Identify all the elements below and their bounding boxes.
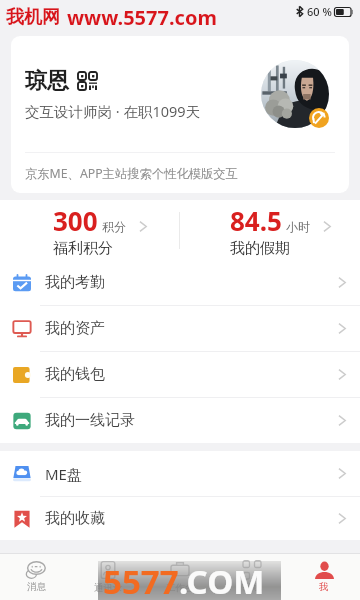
- button[interactable]: 工作台: [144, 554, 216, 600]
- staticText: 消息: [27, 581, 46, 593]
- staticText: 福利积分: [53, 239, 113, 258]
- staticText: 小时: [286, 219, 310, 234]
- staticText: 我: [319, 581, 329, 593]
- button[interactable]: 我的钱包: [0, 352, 360, 397]
- staticText: 300: [53, 203, 98, 238]
- staticText: www.5577.com: [67, 4, 217, 31]
- staticText: .COM: [179, 559, 265, 595]
- staticText: 我的收藏: [45, 509, 105, 528]
- staticText: 我的假期: [230, 239, 290, 258]
- button[interactable]: 我的考勤: [0, 260, 360, 305]
- staticText: 京东ME、APP主站搜索个性化模版交互: [25, 165, 238, 182]
- staticText: 琼恩: [25, 67, 69, 95]
- button[interactable]: 我的收藏: [0, 497, 360, 540]
- staticText: 我的一线记录: [45, 411, 135, 430]
- button[interactable]: 通讯录: [72, 554, 144, 600]
- staticText: 交互设计师岗 · 在职1099天: [25, 101, 201, 121]
- button[interactable]: 300: [0, 200, 179, 260]
- staticText: 84.5: [230, 203, 282, 238]
- staticText: 我机网: [6, 6, 60, 29]
- staticText: 工作台: [166, 582, 195, 594]
- button[interactable]: 84.5: [180, 200, 360, 260]
- button[interactable]: 消息: [0, 554, 72, 600]
- staticText: 60 %: [307, 4, 332, 19]
- staticText: 5577: [103, 559, 179, 595]
- staticText: ME盘: [45, 464, 82, 484]
- staticText: 积分: [102, 219, 126, 234]
- button[interactable]: ME盘: [0, 451, 360, 496]
- button[interactable]: Badge: [309, 108, 329, 128]
- staticText: 通讯录: [94, 582, 123, 594]
- staticText: 发现: [243, 581, 262, 593]
- button[interactable]: 我的资产: [0, 306, 360, 351]
- button[interactable]: 我的一线记录: [0, 398, 360, 443]
- staticText: 我的考勤: [45, 273, 105, 292]
- staticText: 我的资产: [45, 319, 105, 338]
- button[interactable]: 我: [288, 554, 360, 600]
- staticText: 我的钱包: [45, 365, 105, 384]
- button[interactable]: 发现: [216, 554, 288, 600]
